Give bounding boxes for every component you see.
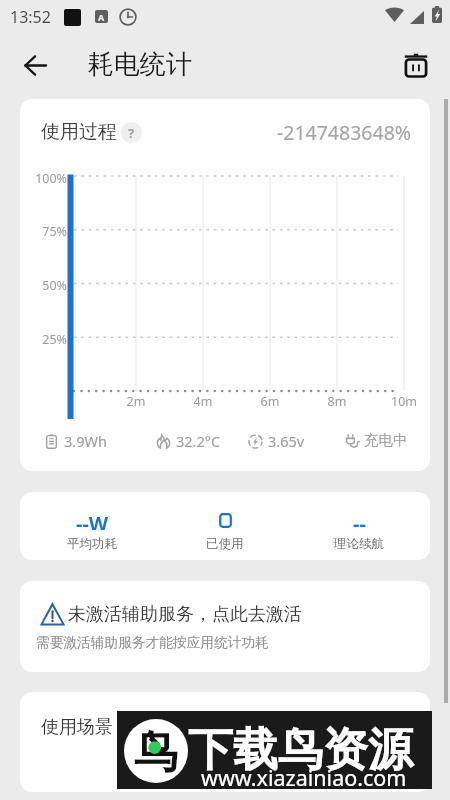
staticText: 32.2°C <box>176 431 221 451</box>
staticText: 25% <box>20 331 67 348</box>
staticText: 3.65v <box>268 431 305 451</box>
staticText: 已使用 <box>163 536 287 552</box>
button[interactable]: Delete <box>394 43 437 86</box>
staticText: 平均功耗 <box>30 536 154 552</box>
staticText: 需要激活辅助服务才能按应用统计功耗 <box>36 634 269 651</box>
staticText: 4m <box>183 393 223 410</box>
staticText: 使用场景 <box>41 716 113 739</box>
button[interactable]: 未激活辅助服务，点此去激活 <box>20 581 430 672</box>
staticText: 未激活辅助服务，点此去激活 <box>68 603 302 626</box>
staticText: 100% <box>20 170 67 187</box>
staticText: 13:52 <box>10 6 51 28</box>
button[interactable]: Back <box>13 43 57 87</box>
staticText: www.xiazainiao.com <box>201 763 407 792</box>
staticText: 8m <box>317 393 357 410</box>
staticText: 使用过程 <box>41 120 117 144</box>
button[interactable]: --W <box>30 492 154 560</box>
staticText: 2m <box>116 393 156 410</box>
staticText: 10m <box>384 393 424 410</box>
staticText: 75% <box>20 223 67 240</box>
staticText: --W <box>76 510 109 530</box>
staticText: 50% <box>20 277 67 294</box>
staticText: A <box>98 11 105 23</box>
staticText: ? <box>128 124 135 142</box>
staticText: 6m <box>250 393 290 410</box>
button[interactable]: -- <box>297 492 421 560</box>
staticText: 耗电统计 <box>88 48 192 81</box>
staticText: 下载鸟资源 <box>188 722 413 779</box>
staticText: 充电中 <box>364 431 408 449</box>
staticText: 鸟 <box>134 725 178 780</box>
staticText: -- <box>353 510 366 530</box>
staticText: -2147483648% <box>261 119 411 146</box>
staticText: 理论续航 <box>297 536 421 552</box>
button[interactable]: Help <box>121 122 142 143</box>
staticText: 3.9Wh <box>64 431 107 451</box>
button[interactable]: 已使用 <box>163 492 287 560</box>
